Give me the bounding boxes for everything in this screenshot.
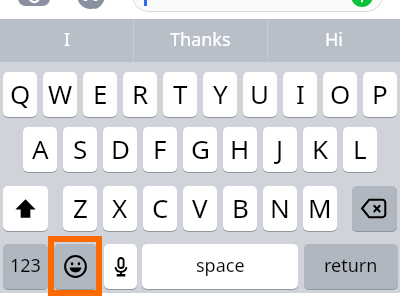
staticText: L [353, 131, 367, 166]
button[interactable]: V [183, 186, 217, 231]
staticText: E [93, 76, 108, 111]
staticText: X [112, 190, 128, 225]
button[interactable]: H [223, 127, 257, 172]
staticText: F [153, 131, 167, 166]
staticText: I [64, 27, 71, 52]
button[interactable]: Emoji [54, 244, 97, 289]
button[interactable]: I [283, 72, 317, 117]
button[interactable]: 123 [3, 244, 48, 289]
button[interactable] [132, 0, 383, 12]
staticText: Q [10, 76, 31, 111]
button[interactable]: Send [351, 0, 373, 7]
staticText: return [324, 253, 378, 278]
button[interactable]: K [303, 127, 337, 172]
staticText: M [308, 190, 332, 225]
button[interactable]: Shift [3, 186, 48, 231]
button[interactable]: Apps [77, 0, 104, 9]
button[interactable]: space [142, 244, 298, 289]
button[interactable]: E [83, 72, 117, 117]
staticText: O [330, 76, 351, 111]
staticText: D [111, 131, 130, 166]
staticText: V [192, 190, 208, 225]
staticText: W [48, 76, 73, 111]
button[interactable]: F [143, 127, 177, 172]
button[interactable]: C [143, 186, 177, 231]
button[interactable]: I [0, 18, 134, 61]
button[interactable]: Hi [267, 18, 400, 61]
button[interactable]: Backspace [352, 186, 397, 231]
staticText: C [152, 190, 169, 225]
button[interactable]: return [304, 244, 398, 289]
button[interactable]: X [103, 186, 137, 231]
staticText: I [296, 76, 305, 111]
staticText: K [312, 131, 329, 166]
button[interactable]: A [23, 127, 57, 172]
button[interactable]: N [263, 186, 297, 231]
button[interactable]: T [163, 72, 197, 117]
button[interactable]: L [343, 127, 377, 172]
button[interactable]: Z [63, 186, 97, 231]
button[interactable]: O [323, 72, 357, 117]
button[interactable]: Y [203, 72, 237, 117]
button[interactable]: Q [3, 72, 37, 117]
staticText: Thanks [170, 27, 231, 52]
button[interactable]: U [243, 72, 277, 117]
button[interactable]: Thanks [134, 18, 267, 61]
staticText: space [196, 253, 245, 278]
staticText: S [73, 131, 88, 166]
button[interactable]: G [183, 127, 217, 172]
staticText: Z [73, 190, 88, 225]
button[interactable]: W [43, 72, 77, 117]
staticText: P [372, 76, 388, 111]
button[interactable]: Dictate [104, 244, 137, 289]
staticText: U [250, 76, 270, 111]
staticText: H [230, 131, 250, 166]
button[interactable]: S [63, 127, 97, 172]
button[interactable]: M [303, 186, 337, 231]
button[interactable]: Camera [18, 0, 50, 6]
staticText: 123 [10, 253, 41, 278]
staticText: N [270, 190, 290, 225]
staticText: Hi [325, 27, 343, 52]
button[interactable]: R [123, 72, 157, 117]
button[interactable]: D [103, 127, 137, 172]
button[interactable]: P [363, 72, 397, 117]
staticText: B [232, 190, 249, 225]
staticText: Y [213, 76, 228, 111]
button[interactable]: B [223, 186, 257, 231]
staticText: A [32, 131, 49, 166]
button[interactable]: J [263, 127, 297, 172]
staticText: R [132, 76, 149, 111]
staticText: J [276, 131, 284, 166]
staticText: T [173, 76, 188, 111]
staticText: G [191, 131, 210, 166]
